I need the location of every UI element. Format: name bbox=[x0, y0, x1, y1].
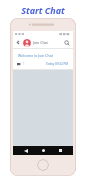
button[interactable]: Search bbox=[63, 39, 71, 47]
button[interactable]: Back bbox=[21, 146, 30, 155]
button[interactable]: Home bbox=[39, 146, 48, 155]
staticText: Today 09:32 PM bbox=[46, 62, 69, 66]
button[interactable]: Home bbox=[37, 159, 49, 171]
button[interactable]: Profile bbox=[23, 39, 31, 47]
button[interactable]: Back bbox=[15, 39, 22, 46]
button[interactable]: Welcome to Join Chat bbox=[13, 48, 73, 70]
staticText: Start Chat bbox=[21, 4, 65, 16]
staticText: Welcome to Join Chat bbox=[18, 53, 53, 58]
button[interactable]: Recent apps bbox=[56, 146, 65, 155]
staticText: 1 bbox=[23, 62, 25, 66]
staticText: Join Chat bbox=[33, 40, 48, 45]
